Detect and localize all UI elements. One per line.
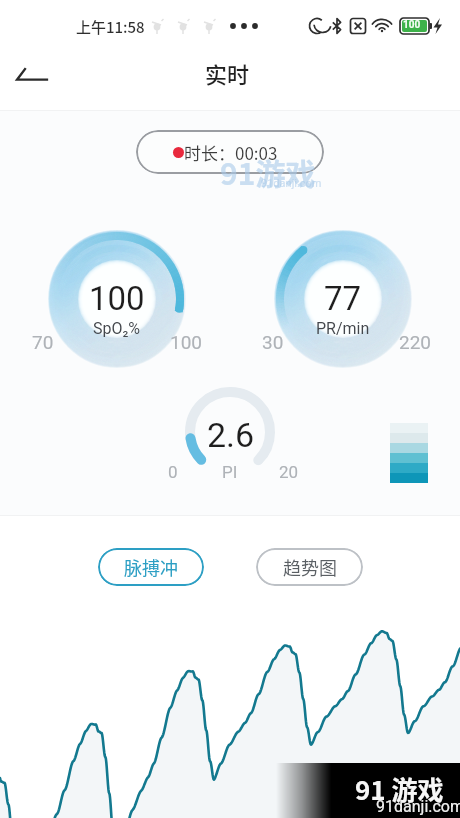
staticText: 30 (262, 331, 284, 353)
staticText: PR/min (316, 319, 370, 338)
staticText: 91danji.com (261, 177, 322, 190)
staticText: 0 (168, 462, 178, 482)
staticText: 时长：00:03 (184, 140, 278, 165)
staticText: SpO₂% (93, 319, 141, 338)
button[interactable]: Back (2, 55, 50, 103)
staticText: 220 (399, 331, 432, 353)
staticText: 91 游戏 (355, 770, 444, 808)
staticText: 91danji.com (376, 797, 460, 816)
staticText: 100 (89, 279, 145, 318)
staticText: 20 (279, 462, 299, 482)
button[interactable]: 时长：00:03 (136, 130, 324, 174)
button[interactable]: 趋势图 (256, 548, 363, 586)
staticText: 91游戏 (220, 150, 316, 190)
staticText: 77 (324, 279, 362, 318)
staticText: 2.6 (207, 415, 255, 455)
staticText: 趋势图 (283, 554, 337, 580)
staticText: 实时 (205, 57, 250, 89)
staticText: 100 (403, 19, 421, 31)
staticText: 脉搏冲 (124, 554, 178, 580)
staticText: 100 (170, 331, 203, 353)
staticText: 上午11:58 (76, 16, 145, 38)
staticText: 70 (32, 331, 54, 353)
staticText: PI (222, 462, 238, 482)
button[interactable]: 脉搏冲 (98, 548, 204, 586)
